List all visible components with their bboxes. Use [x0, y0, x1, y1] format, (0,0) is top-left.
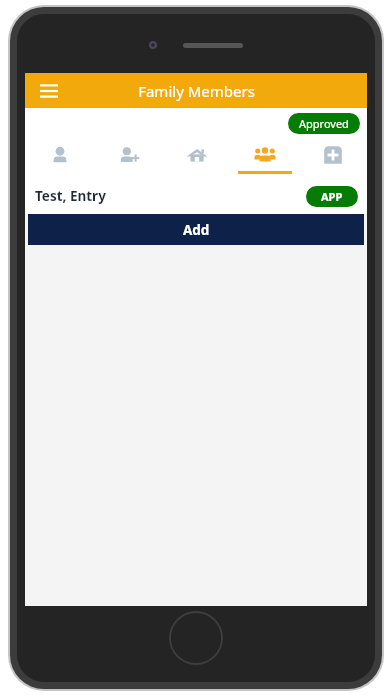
staticText: APP — [321, 189, 343, 204]
button[interactable]: Approved — [288, 113, 360, 134]
button[interactable]: Add — [28, 214, 364, 245]
staticText: Add — [183, 221, 210, 239]
button[interactable]: APP — [306, 186, 358, 207]
button[interactable]: Home — [163, 138, 231, 178]
button[interactable]: Open navigation menu — [34, 76, 64, 106]
staticText: Family Members — [138, 81, 255, 101]
button[interactable]: Add new — [299, 138, 367, 178]
button[interactable]: Add person — [94, 138, 163, 178]
staticText: Test, Entry — [35, 187, 106, 205]
button[interactable]: Test, Entry — [25, 178, 367, 214]
staticText: Approved — [299, 116, 349, 131]
button[interactable]: Family members — [231, 138, 299, 178]
button[interactable]: Person — [25, 138, 94, 178]
